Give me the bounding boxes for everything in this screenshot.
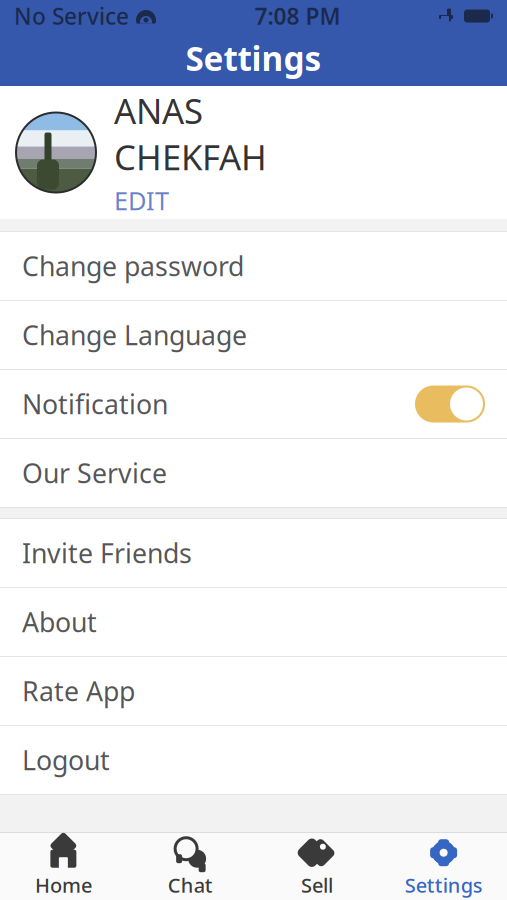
button[interactable]: Invite Friends — [0, 519, 507, 588]
staticText: About — [22, 604, 97, 640]
button[interactable]: EDIT — [114, 184, 293, 217]
button[interactable]: Change password — [0, 232, 507, 301]
staticText: Settings — [185, 36, 321, 80]
staticText: Logout — [22, 742, 110, 778]
staticText: Sell — [301, 872, 333, 898]
button[interactable]: Notification — [0, 370, 507, 439]
button[interactable]: Sell — [253, 829, 380, 900]
staticText: 7:08 PM — [254, 1, 340, 31]
button[interactable]: Our Service — [0, 439, 507, 508]
staticText: Invite Friends — [22, 535, 192, 571]
staticText: Change Language — [22, 317, 247, 353]
staticText: Settings — [405, 872, 483, 898]
button[interactable]: Logout — [0, 726, 507, 795]
button[interactable]: Rate App — [0, 657, 507, 726]
staticText: ANAS CHEKFAH — [114, 88, 267, 180]
staticText: Home — [35, 872, 92, 898]
staticText: Rate App — [22, 673, 135, 709]
button[interactable]: Settings — [380, 829, 507, 900]
button[interactable]: About — [0, 588, 507, 657]
staticText: Change password — [22, 248, 244, 284]
staticText: EDIT — [114, 184, 169, 217]
staticText: No Service — [14, 1, 129, 31]
staticText: Notification — [22, 386, 168, 422]
button[interactable]: Change Language — [0, 301, 507, 370]
button[interactable]: Chat — [127, 829, 254, 900]
staticText: Our Service — [22, 455, 167, 491]
staticText: Chat — [168, 872, 213, 898]
button[interactable]: Home — [0, 829, 127, 900]
